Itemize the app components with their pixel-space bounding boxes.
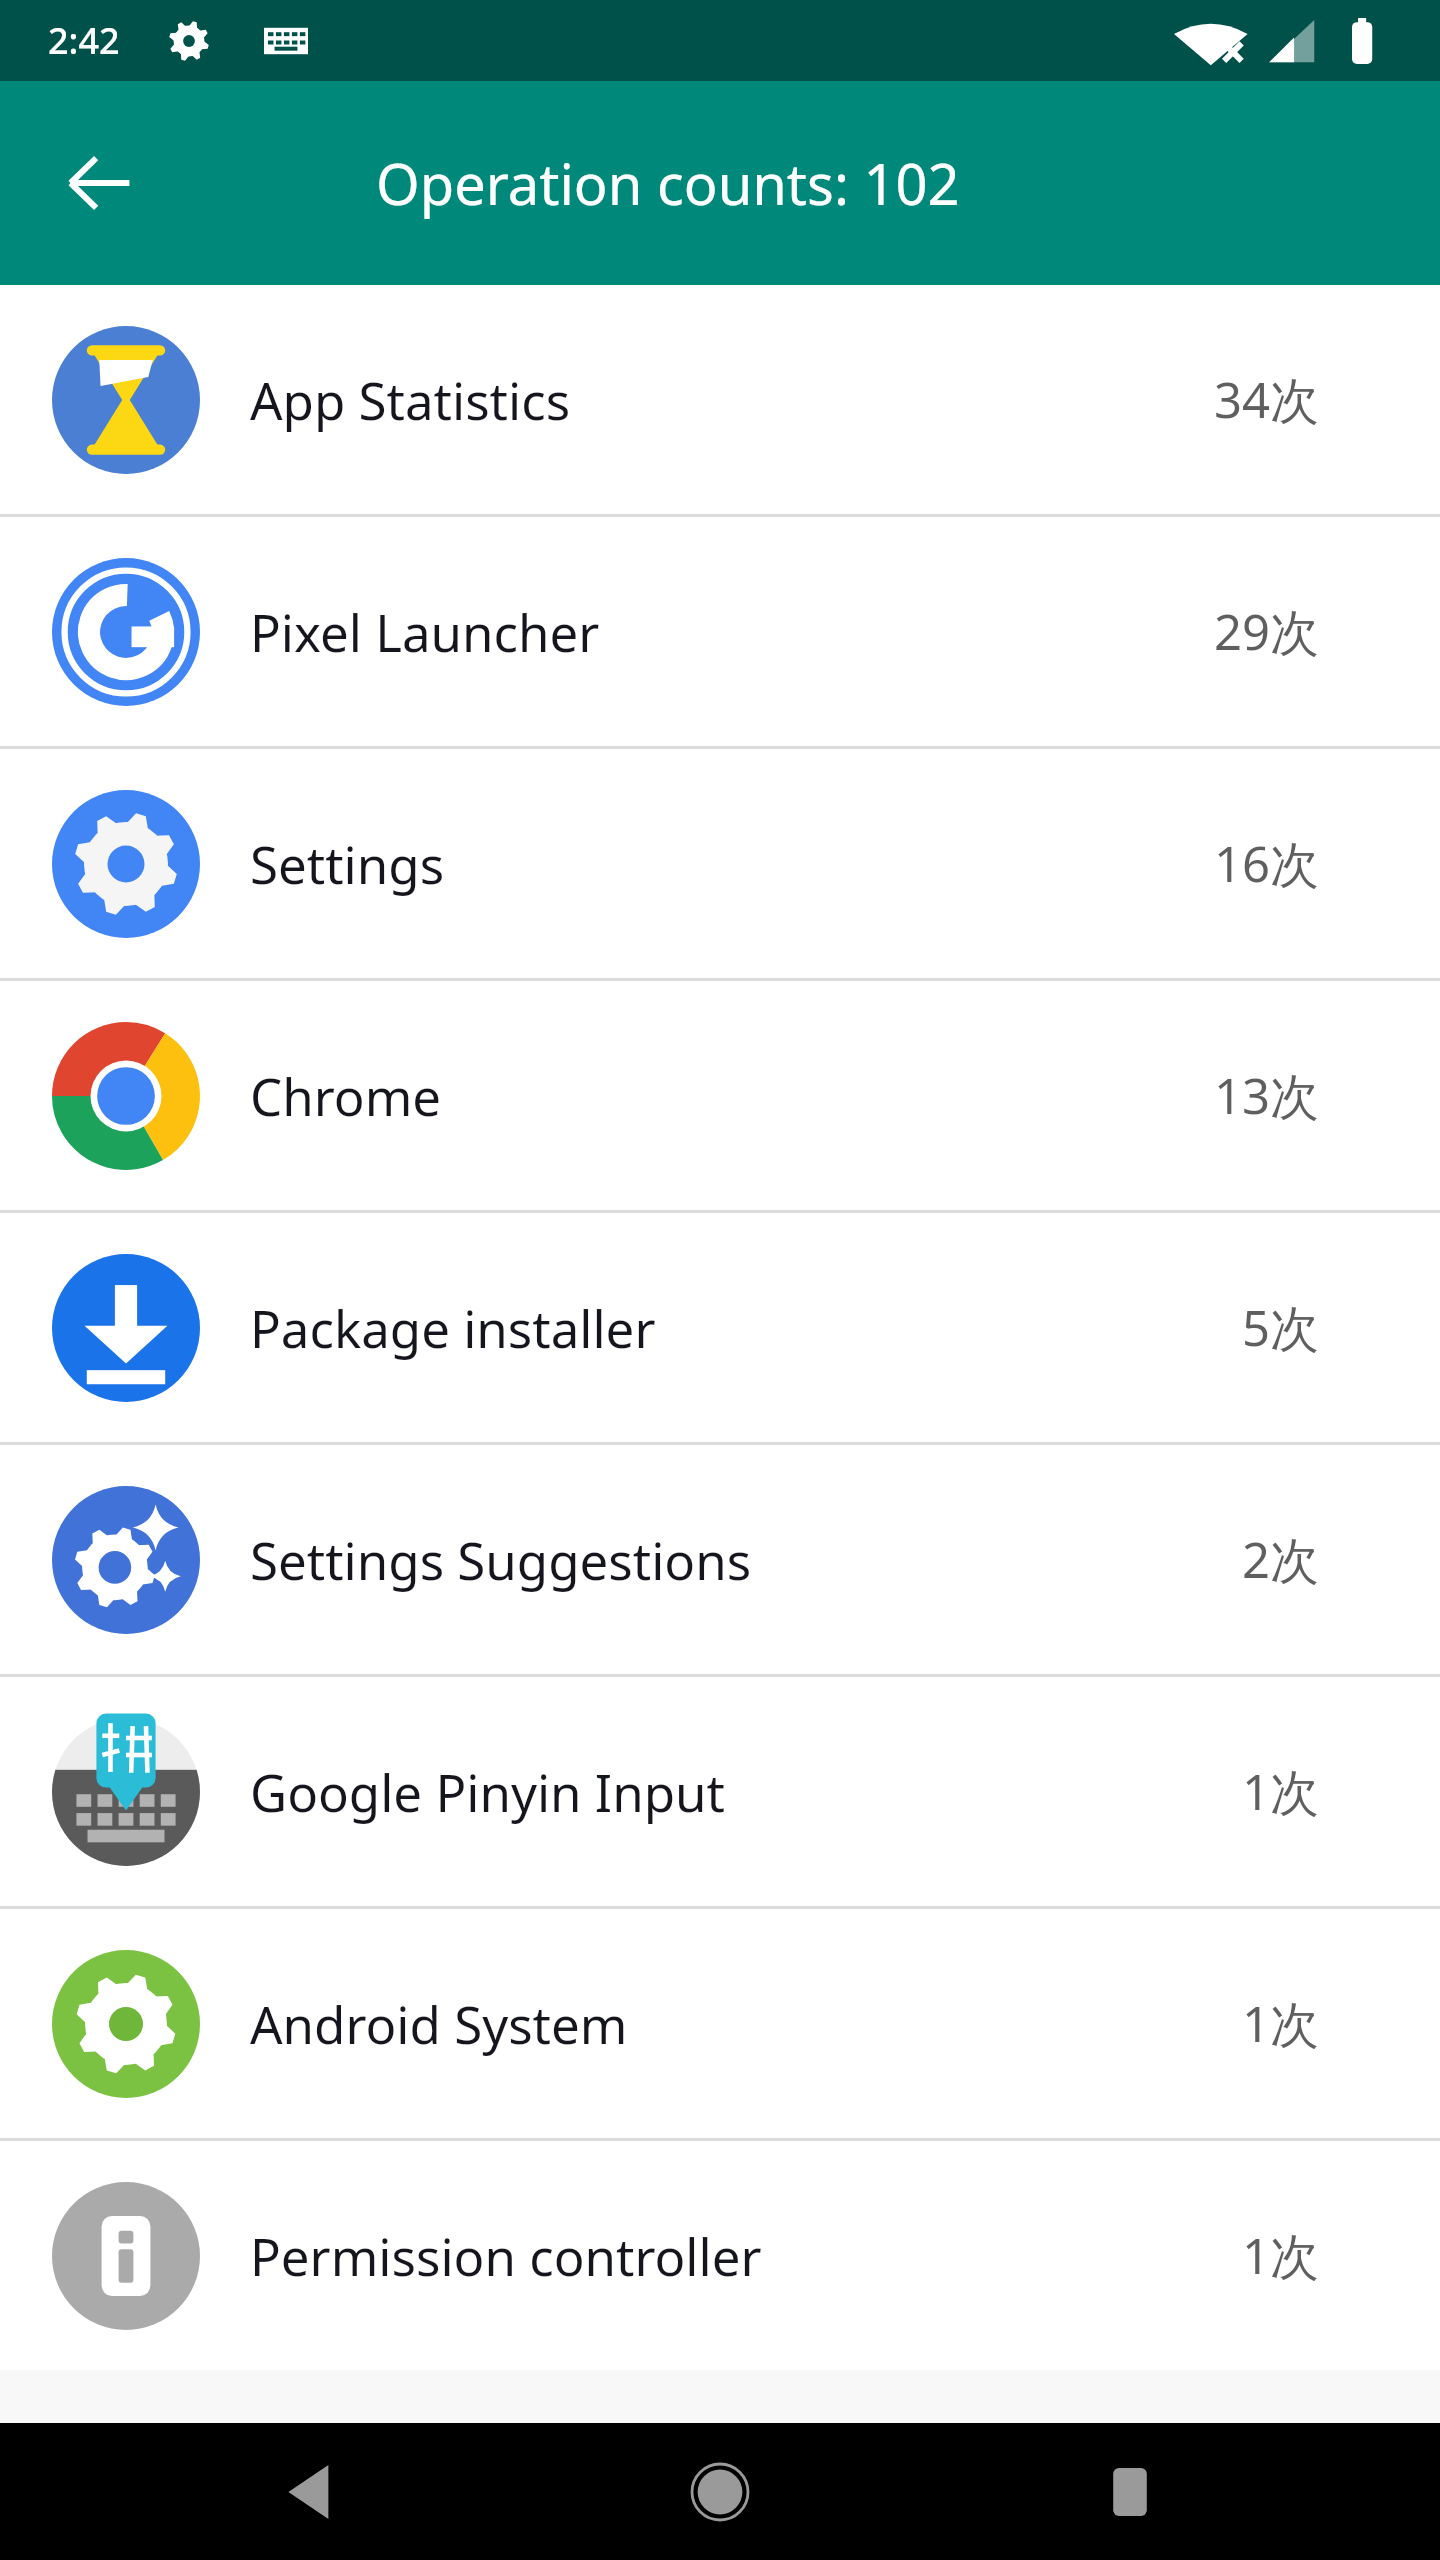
staticText: Permission controller [250, 2221, 762, 2290]
staticText: Pixel Launcher [250, 597, 600, 666]
button[interactable]: Back [250, 2432, 370, 2552]
button[interactable]: Home [660, 2432, 780, 2552]
button[interactable]: Settings [0, 749, 1440, 978]
staticText: 13次 [1214, 1062, 1320, 1129]
button[interactable]: Pixel Launcher [0, 517, 1440, 746]
staticText: 1次 [1242, 1990, 1320, 2057]
staticText: 34次 [1214, 366, 1320, 433]
button[interactable]: Settings Suggestions [0, 1445, 1440, 1674]
staticText: 1次 [1242, 2222, 1320, 2289]
staticText: Chrome [250, 1061, 442, 1130]
button[interactable]: Back [36, 119, 164, 247]
button[interactable]: Package installer [0, 1213, 1440, 1442]
button[interactable]: Chrome [0, 981, 1440, 1210]
staticText: 2:42 [48, 16, 120, 65]
staticText: 16次 [1214, 830, 1320, 897]
staticText: 2次 [1242, 1526, 1320, 1593]
staticText: Settings [250, 829, 445, 898]
staticText: 1次 [1242, 1758, 1320, 1825]
staticText: Settings Suggestions [250, 1525, 752, 1594]
button[interactable]: Permission controller [0, 2141, 1440, 2370]
button[interactable]: Google Pinyin Input [0, 1677, 1440, 1906]
staticText: App Statistics [250, 365, 571, 434]
staticText: Operation counts: 102 [376, 145, 960, 221]
button[interactable]: Android System [0, 1909, 1440, 2138]
staticText: Package installer [250, 1293, 656, 1362]
button[interactable]: App Statistics [0, 285, 1440, 514]
staticText: Google Pinyin Input [250, 1757, 725, 1826]
staticText: 29次 [1214, 598, 1320, 665]
staticText: Android System [250, 1989, 628, 2058]
button[interactable]: Recents [1070, 2432, 1190, 2552]
staticText: 5次 [1242, 1294, 1320, 1361]
